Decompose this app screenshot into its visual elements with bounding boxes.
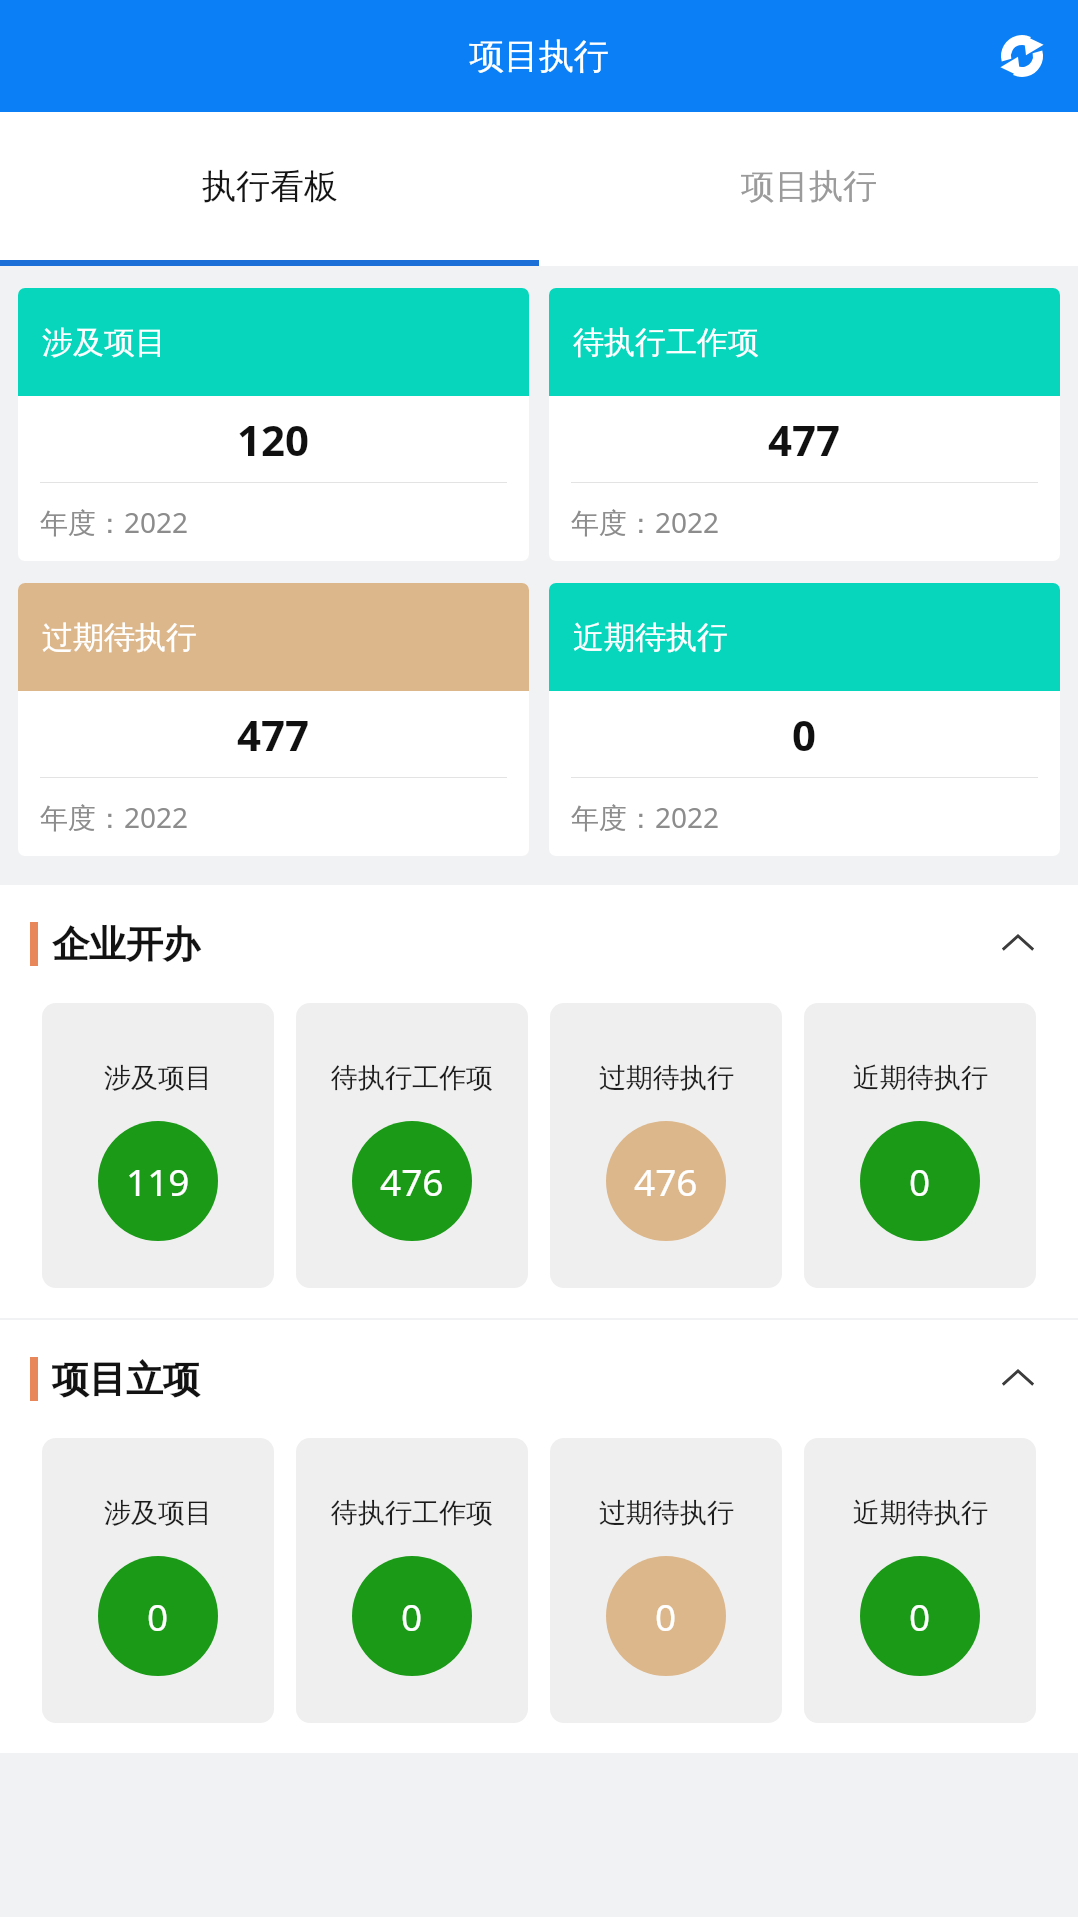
button[interactable]: 涉及项目 — [42, 1438, 274, 1723]
staticText: 年度：2022 — [571, 503, 720, 541]
staticText: 476 — [380, 1156, 444, 1206]
staticText: 企业开办 — [52, 921, 200, 968]
staticText: 477 — [768, 411, 841, 468]
staticText: 0 — [401, 1591, 423, 1641]
button[interactable]: 项目立项 — [0, 1320, 1078, 1438]
button[interactable]: 过期待执行 — [550, 1003, 782, 1288]
button[interactable]: 企业开办 — [0, 885, 1078, 1003]
button[interactable]: 近期待执行 — [804, 1003, 1036, 1288]
button[interactable]: 近期待执行 — [804, 1438, 1036, 1723]
button[interactable]: 近期待执行 — [549, 583, 1060, 856]
staticText: 476 — [634, 1156, 698, 1206]
staticText: 项目立项 — [52, 1356, 200, 1403]
staticText: 0 — [909, 1156, 931, 1206]
staticText: 过期待执行 — [599, 1496, 734, 1530]
staticText: 119 — [126, 1156, 190, 1206]
button[interactable]: 执行看板 — [0, 112, 539, 260]
staticText: 近期待执行 — [853, 1061, 988, 1095]
button[interactable]: 待执行工作项 — [296, 1438, 528, 1723]
staticText: 120 — [237, 411, 310, 468]
staticText: 年度：2022 — [40, 798, 189, 836]
staticText: 过期待执行 — [599, 1061, 734, 1095]
staticText: 涉及项目 — [104, 1061, 212, 1095]
staticText: 项目执行 — [741, 165, 877, 208]
staticText: 项目执行 — [469, 34, 609, 78]
staticText: 近期待执行 — [573, 618, 728, 657]
staticText: 0 — [909, 1591, 931, 1641]
staticText: 涉及项目 — [42, 323, 166, 362]
button[interactable]: Refresh — [986, 20, 1058, 92]
staticText: 待执行工作项 — [331, 1496, 493, 1530]
button[interactable]: 过期待执行 — [18, 583, 529, 856]
button[interactable]: 涉及项目 — [18, 288, 529, 561]
button[interactable]: 过期待执行 — [550, 1438, 782, 1723]
button[interactable]: 涉及项目 — [42, 1003, 274, 1288]
staticText: 涉及项目 — [104, 1496, 212, 1530]
button[interactable]: Collapse 项目立项 — [982, 1343, 1054, 1415]
staticText: 待执行工作项 — [573, 323, 759, 362]
staticText: 0 — [792, 706, 817, 763]
button[interactable]: Collapse 企业开办 — [982, 908, 1054, 980]
staticText: 待执行工作项 — [331, 1061, 493, 1095]
staticText: 0 — [655, 1591, 677, 1641]
staticText: 过期待执行 — [42, 618, 197, 657]
button[interactable]: 待执行工作项 — [296, 1003, 528, 1288]
staticText: 近期待执行 — [853, 1496, 988, 1530]
button[interactable]: 项目执行 — [539, 112, 1078, 260]
button[interactable]: 待执行工作项 — [549, 288, 1060, 561]
staticText: 年度：2022 — [40, 503, 189, 541]
staticText: 年度：2022 — [571, 798, 720, 836]
staticText: 0 — [147, 1591, 169, 1641]
staticText: 477 — [237, 706, 310, 763]
staticText: 执行看板 — [202, 165, 338, 208]
